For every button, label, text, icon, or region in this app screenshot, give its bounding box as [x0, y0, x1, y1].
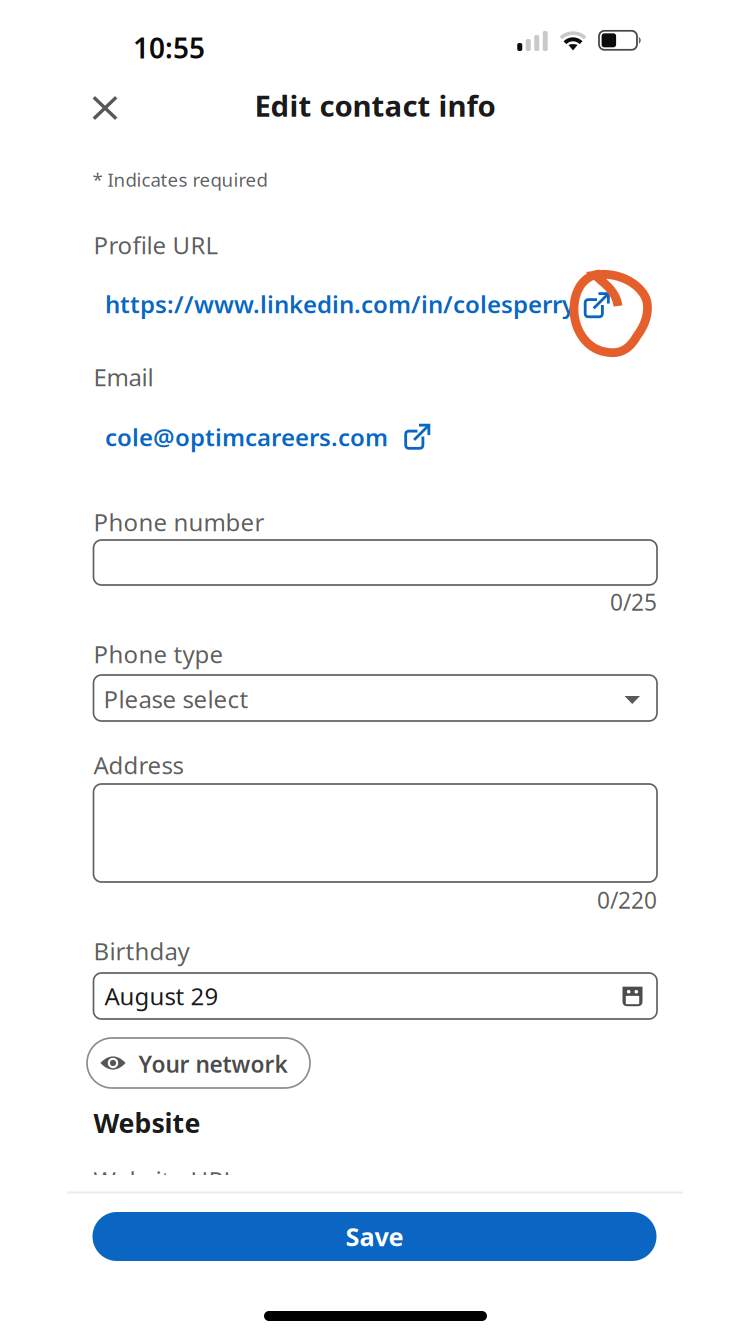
staticText: Edit contact info [254, 86, 495, 125]
staticText: Please select [103, 683, 248, 715]
staticText: 10:55 [133, 29, 205, 66]
staticText: 0/25 [610, 587, 657, 617]
staticText: August 29 [104, 980, 218, 1012]
button[interactable]: Please select [93, 675, 657, 721]
staticText: 0/220 [597, 885, 657, 915]
staticText: Email [93, 361, 153, 393]
button[interactable]: Save [92, 1212, 656, 1261]
staticText: https://www.linkedin.com/in/colesperry [105, 288, 575, 320]
button[interactable]: Your network [87, 1038, 310, 1088]
staticText: Save [345, 1220, 403, 1253]
button[interactable]: August 29 [93, 973, 657, 1019]
staticText: * Indicates required [92, 167, 267, 192]
staticText: Website [93, 1105, 200, 1140]
staticText: Website URL [93, 1164, 236, 1196]
staticText: Phone type [93, 638, 223, 670]
staticText: Birthday [93, 935, 189, 967]
button[interactable]: https://www.linkedin.com/in/colesperry [105, 288, 610, 318]
staticText: Profile URL [93, 229, 218, 261]
staticText: Your network [138, 1049, 287, 1079]
staticText: Phone number [93, 506, 264, 538]
button[interactable]: Close [78, 82, 132, 134]
staticText: cole@optimcareers.com [105, 421, 388, 453]
staticText: Address [93, 749, 183, 781]
button[interactable]: cole@optimcareers.com [105, 421, 432, 451]
